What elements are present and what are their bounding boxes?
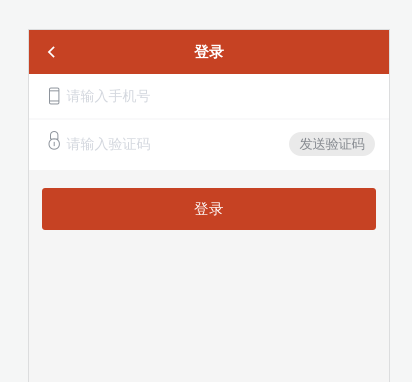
button[interactable]: 发送验证码	[289, 120, 389, 170]
staticText: 发送验证码	[299, 136, 364, 152]
staticText: 登录	[194, 43, 224, 61]
staticText: 登录	[194, 200, 224, 218]
button[interactable]: Back	[29, 30, 77, 74]
button[interactable]: 登录	[42, 188, 376, 230]
button[interactable]: 请输入验证码	[29, 120, 289, 170]
staticText: 请输入手机号	[66, 87, 150, 105]
staticText: 请输入验证码	[66, 135, 150, 153]
button[interactable]: 请输入手机号	[29, 74, 389, 118]
